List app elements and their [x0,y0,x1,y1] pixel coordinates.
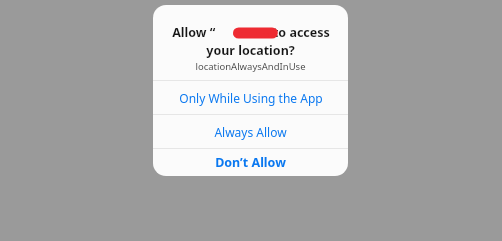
staticText: Only While Using the App [179,90,323,106]
staticText: Allow “ ” to access [172,24,330,41]
button[interactable]: Don’t Allow [153,149,348,176]
button[interactable]: Always Allow [153,115,348,148]
staticText: Don’t Allow [215,154,286,171]
staticText: your location? [206,42,295,59]
staticText: locationAlwaysAndInUse [195,60,306,73]
button[interactable]: Only While Using the App [153,81,348,114]
staticText: Always Allow [214,124,287,140]
